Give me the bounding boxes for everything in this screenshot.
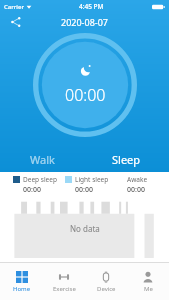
staticText: Sleep (112, 152, 141, 167)
button[interactable]: Home (0, 263, 43, 300)
button[interactable]: Walk (0, 146, 84, 172)
staticText: 00:00 (75, 185, 93, 195)
staticText: Awake (127, 175, 148, 184)
staticText: Deep sleep (23, 175, 57, 184)
button[interactable]: Me (127, 263, 169, 300)
staticText: Walk (30, 152, 55, 167)
staticText: 4:45 PM (79, 2, 104, 11)
staticText: Carrier (4, 3, 24, 11)
staticText: Exercise (53, 285, 76, 293)
button[interactable]: Exercise (43, 263, 85, 300)
staticText: Me (144, 285, 153, 293)
staticText: 00:00 (23, 185, 41, 195)
staticText: 2020-08-07 (61, 16, 108, 28)
staticText: Light sleep (75, 175, 109, 184)
button[interactable]: Sleep (84, 146, 169, 172)
staticText: 00:00 (65, 84, 106, 106)
button[interactable]: Share (8, 14, 24, 30)
button[interactable]: Device (85, 263, 127, 300)
staticText: No data (70, 223, 100, 234)
staticText: 00:00 (127, 185, 145, 195)
staticText: Home (13, 285, 31, 293)
staticText: Device (97, 285, 116, 293)
